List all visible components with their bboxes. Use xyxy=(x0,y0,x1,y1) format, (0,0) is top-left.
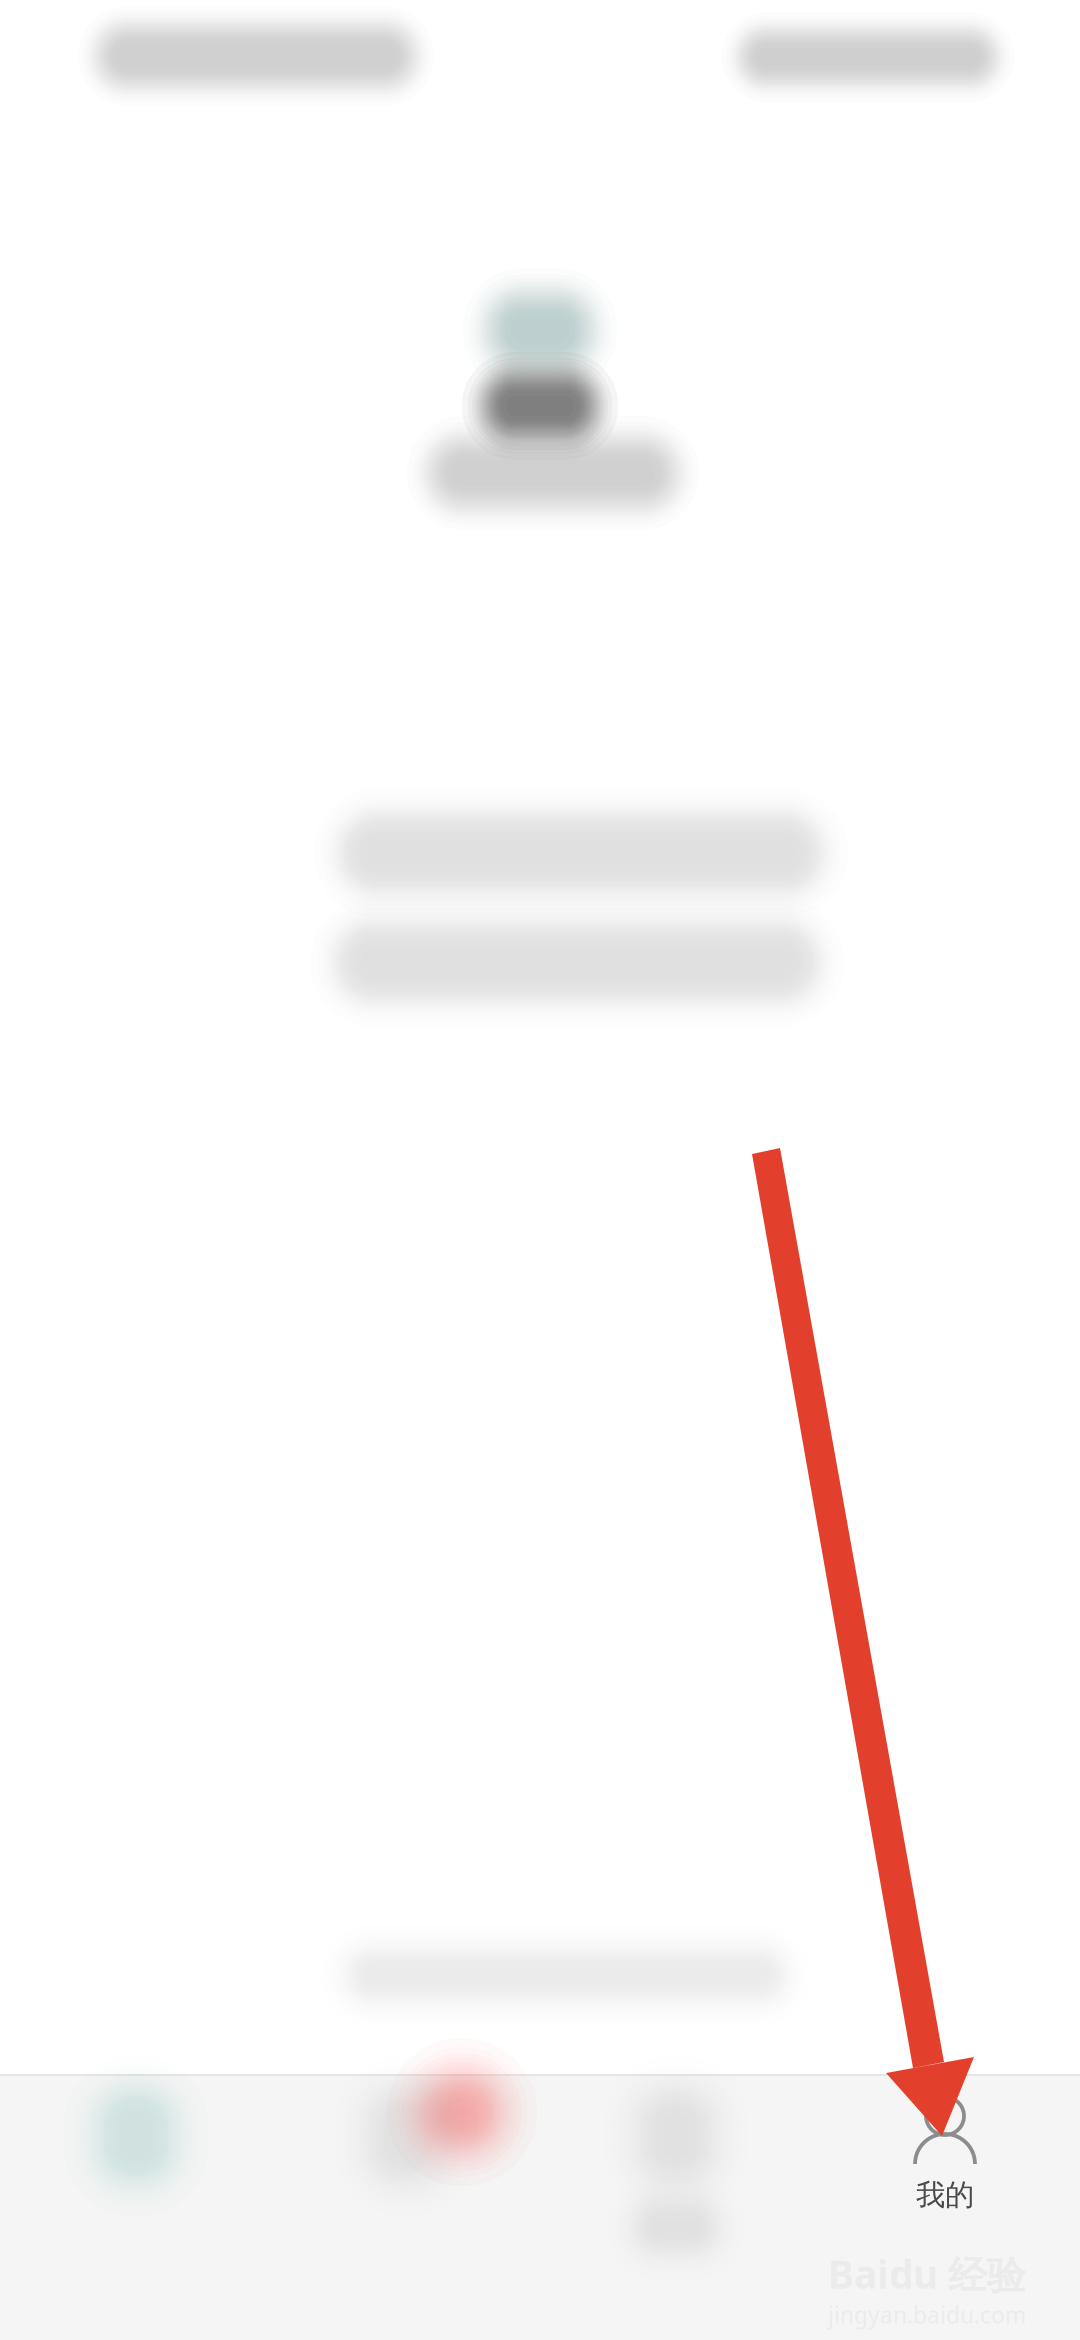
button[interactable]: Tab xyxy=(270,2074,540,2340)
staticText: Baidu 经验 xyxy=(828,2248,1026,2299)
staticText: 我的 xyxy=(916,2177,974,2213)
staticText: jingyan.baidu.com xyxy=(828,2299,1026,2330)
button[interactable]: Tab xyxy=(0,2074,270,2340)
button[interactable]: 我的 xyxy=(810,2074,1080,2340)
button[interactable]: Tab xyxy=(540,2074,810,2340)
